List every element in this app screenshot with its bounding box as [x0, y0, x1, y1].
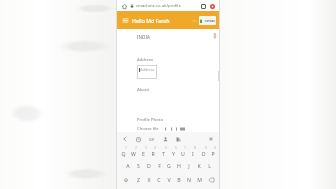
staticText: D	[147, 162, 151, 169]
staticText: F	[158, 162, 161, 169]
button[interactable]: V	[164, 173, 174, 186]
button[interactable]: Shift	[118, 173, 133, 186]
staticText: About	[137, 87, 150, 93]
staticText: 2	[135, 146, 137, 150]
staticText: X	[147, 176, 151, 183]
staticText: Choose file	[137, 126, 159, 132]
button[interactable]: 2	[128, 145, 138, 158]
staticText: 1	[125, 146, 127, 150]
button[interactable]: M	[194, 173, 204, 186]
button[interactable]: 7	[178, 145, 188, 158]
staticText: 0	[214, 146, 216, 150]
button[interactable]: Menu	[120, 15, 130, 25]
staticText: E	[142, 150, 145, 157]
button[interactable]: D	[144, 159, 154, 172]
button[interactable]: A	[122, 159, 133, 172]
staticText: Address	[137, 57, 154, 63]
button[interactable]: X	[144, 173, 154, 186]
button[interactable]: L	[204, 159, 214, 172]
staticText: N	[187, 176, 191, 183]
staticText: W	[131, 150, 136, 157]
staticText: G	[167, 162, 171, 169]
button[interactable]: Settings	[207, 135, 215, 143]
staticText: Q	[121, 150, 126, 157]
staticText: cmachine.co.uk/profile	[136, 3, 181, 9]
button[interactable]: Home	[120, 2, 128, 10]
staticText: K	[197, 162, 201, 169]
button[interactable]: B	[174, 173, 184, 186]
button[interactable]: Tabs	[199, 2, 207, 10]
button[interactable]: S	[133, 159, 144, 172]
staticText: 6	[175, 146, 177, 150]
staticText: Profile Photo	[137, 117, 163, 123]
button[interactable]: 1	[118, 145, 128, 158]
staticText: Address	[140, 67, 155, 72]
staticText: I	[192, 150, 194, 157]
staticText: B	[177, 176, 181, 183]
staticText: 7	[184, 146, 186, 150]
staticText: Z	[137, 176, 140, 183]
staticText: O	[201, 150, 206, 157]
button[interactable]: 6	[168, 145, 178, 158]
button[interactable]: F	[154, 159, 164, 172]
button[interactable]: Translate	[174, 135, 182, 143]
staticText: P	[211, 150, 215, 157]
staticText: L	[208, 162, 211, 169]
button[interactable]: GIF	[147, 135, 156, 143]
staticText: INDIA	[137, 34, 150, 40]
button[interactable]: C	[154, 173, 164, 186]
staticText: cmac	[205, 18, 216, 23]
button[interactable]: Clipboard	[134, 135, 142, 143]
button[interactable]: 9	[198, 145, 208, 158]
staticText: A	[126, 162, 130, 169]
button[interactable]: 4	[148, 145, 158, 158]
button[interactable]: Logo	[199, 16, 216, 25]
button[interactable]: Back	[121, 135, 129, 143]
button[interactable]: Z	[133, 173, 144, 186]
button[interactable]: Stickers	[161, 135, 169, 143]
staticText: 3	[145, 146, 147, 150]
button[interactable]: Menu	[208, 2, 216, 10]
staticText: J	[188, 162, 190, 169]
staticText: S	[137, 162, 140, 169]
button[interactable]: Backspace	[204, 173, 218, 186]
button[interactable]: Address	[137, 65, 157, 79]
staticText: 9	[205, 146, 207, 150]
button[interactable]: N	[184, 173, 194, 186]
button[interactable]: Choose file	[137, 126, 159, 132]
button[interactable]: 5	[158, 145, 168, 158]
button[interactable]: J	[184, 159, 194, 172]
button[interactable]: 3	[138, 145, 148, 158]
staticText: 5	[165, 146, 167, 150]
staticText: Hello Md Farah	[132, 17, 170, 24]
staticText: M	[197, 176, 202, 183]
button[interactable]: 8	[188, 145, 198, 158]
staticText: GIF	[149, 137, 155, 142]
staticText: Y	[172, 150, 175, 157]
button[interactable]: G	[164, 159, 174, 172]
staticText: H	[177, 162, 181, 169]
staticText: T	[162, 150, 165, 157]
button[interactable]: H	[174, 159, 184, 172]
staticText: 8	[194, 146, 196, 150]
button[interactable]: 0	[208, 145, 218, 158]
staticText: C	[157, 176, 161, 183]
staticText: 4	[154, 146, 156, 150]
staticText: V	[167, 176, 171, 183]
staticText: R	[151, 150, 155, 157]
staticText: U	[181, 150, 185, 157]
button[interactable]: K	[194, 159, 204, 172]
